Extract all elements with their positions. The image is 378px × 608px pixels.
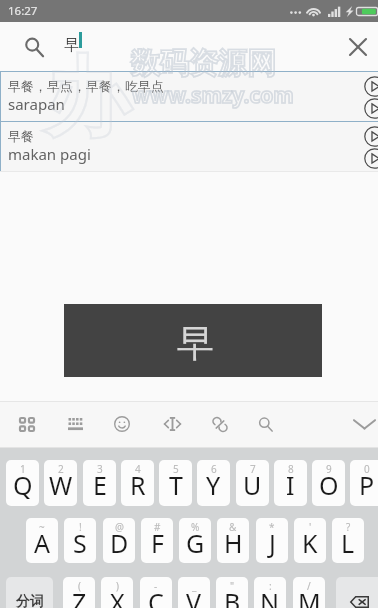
- button[interactable]: %: [179, 518, 211, 563]
- staticText: V: [186, 585, 202, 608]
- button[interactable]: Backspace: [336, 577, 378, 608]
- button[interactable]: :: [254, 577, 286, 608]
- button[interactable]: 0: [350, 460, 378, 506]
- button[interactable]: 分词: [6, 577, 53, 608]
- staticText: H: [224, 526, 243, 560]
- staticText: L: [341, 526, 355, 560]
- staticText: 早餐: [8, 128, 34, 144]
- button[interactable]: 9: [312, 460, 345, 506]
- button[interactable]: Search: [248, 404, 282, 444]
- staticText: 办: [44, 44, 130, 152]
- staticText: S: [73, 526, 87, 560]
- staticText: 1: [20, 462, 26, 476]
- button[interactable]: ~: [26, 518, 58, 563]
- staticText: B: [224, 585, 241, 608]
- button[interactable]: Text: [155, 404, 189, 444]
- staticText: @: [115, 520, 124, 534]
- staticText: 4: [135, 462, 141, 476]
- button[interactable]: 早餐，早点，早餐，吃早点: [0, 72, 378, 121]
- staticText: 0: [364, 462, 370, 476]
- staticText: :: [269, 579, 272, 593]
- staticText: *: [269, 520, 275, 534]
- button[interactable]: _: [178, 577, 210, 608]
- staticText: -: [154, 579, 158, 593]
- button[interactable]: 早餐: [0, 122, 378, 171]
- staticText: 7: [250, 462, 256, 476]
- button[interactable]: !: [64, 518, 96, 563]
- staticText: 5: [173, 462, 179, 476]
- button[interactable]: Search: [19, 32, 50, 63]
- staticText: sarapan: [8, 94, 65, 114]
- staticText: D: [110, 526, 129, 560]
- button[interactable]: Emoji: [105, 404, 139, 444]
- button[interactable]: Play: [363, 147, 378, 169]
- staticText: (: [78, 579, 81, 593]
- button[interactable]: ?: [332, 518, 364, 563]
- staticText: &: [229, 520, 237, 534]
- button[interactable]: Attach: [203, 404, 237, 444]
- button[interactable]: Apps: [10, 404, 44, 444]
- staticText: 8: [288, 462, 294, 476]
- staticText: E: [93, 468, 107, 502]
- staticText: #: [154, 520, 161, 534]
- staticText: ): [116, 579, 119, 593]
- button[interactable]: ): [101, 577, 133, 608]
- staticText: ?: [346, 520, 351, 534]
- staticText: K: [302, 526, 318, 560]
- button[interactable]: 1: [6, 460, 39, 506]
- staticText: 6: [211, 462, 217, 476]
- button[interactable]: (: [63, 577, 95, 608]
- button[interactable]: Handwriting input: [64, 304, 322, 377]
- staticText: M: [298, 585, 321, 608]
- staticText: N: [260, 585, 280, 608]
- button[interactable]: 4: [121, 460, 154, 506]
- button[interactable]: @: [103, 518, 135, 563]
- staticText: 数码资源网: [131, 45, 276, 82]
- staticText: F: [151, 526, 164, 560]
- staticText: ': [309, 520, 312, 534]
- button[interactable]: 5: [159, 460, 192, 506]
- staticText: 16:27: [8, 3, 38, 19]
- staticText: www.smzy.com: [132, 81, 294, 110]
- button[interactable]: #: [141, 518, 173, 563]
- staticText: X: [110, 585, 125, 608]
- staticText: G: [186, 526, 205, 560]
- staticText: P: [359, 468, 375, 502]
- staticText: %: [191, 520, 200, 534]
- staticText: 3: [97, 462, 103, 476]
- button[interactable]: ": [216, 577, 248, 608]
- staticText: makan pagi: [8, 144, 91, 164]
- staticText: 早餐，早点，早餐，吃早点: [8, 78, 164, 94]
- staticText: Z: [72, 585, 87, 608]
- button[interactable]: &: [217, 518, 249, 563]
- button[interactable]: 8: [274, 460, 307, 506]
- button[interactable]: Play: [363, 75, 378, 97]
- staticText: I: [286, 468, 295, 502]
- button[interactable]: Play: [363, 125, 378, 147]
- button[interactable]: Keyboard: [58, 404, 92, 444]
- button[interactable]: ': [294, 518, 326, 563]
- staticText: 9: [326, 462, 332, 476]
- staticText: T: [169, 468, 183, 502]
- staticText: 早: [64, 36, 79, 55]
- button[interactable]: 2: [44, 460, 77, 506]
- staticText: 分词: [16, 593, 44, 608]
- button[interactable]: *: [256, 518, 288, 563]
- button[interactable]: /: [293, 577, 325, 608]
- staticText: J: [269, 526, 276, 560]
- button[interactable]: -: [140, 577, 172, 608]
- button[interactable]: 7: [236, 460, 269, 506]
- staticText: O: [319, 468, 339, 502]
- staticText: ~: [39, 520, 45, 534]
- staticText: 早: [177, 320, 214, 367]
- staticText: U: [243, 468, 262, 502]
- staticText: A: [34, 526, 50, 560]
- button[interactable]: Collapse: [347, 404, 378, 444]
- button[interactable]: Play: [363, 97, 378, 119]
- staticText: /: [307, 579, 311, 593]
- button[interactable]: Clear: [341, 30, 374, 63]
- staticText: !: [79, 520, 82, 534]
- staticText: Q: [13, 468, 33, 502]
- button[interactable]: 3: [83, 460, 116, 506]
- button[interactable]: 6: [197, 460, 230, 506]
